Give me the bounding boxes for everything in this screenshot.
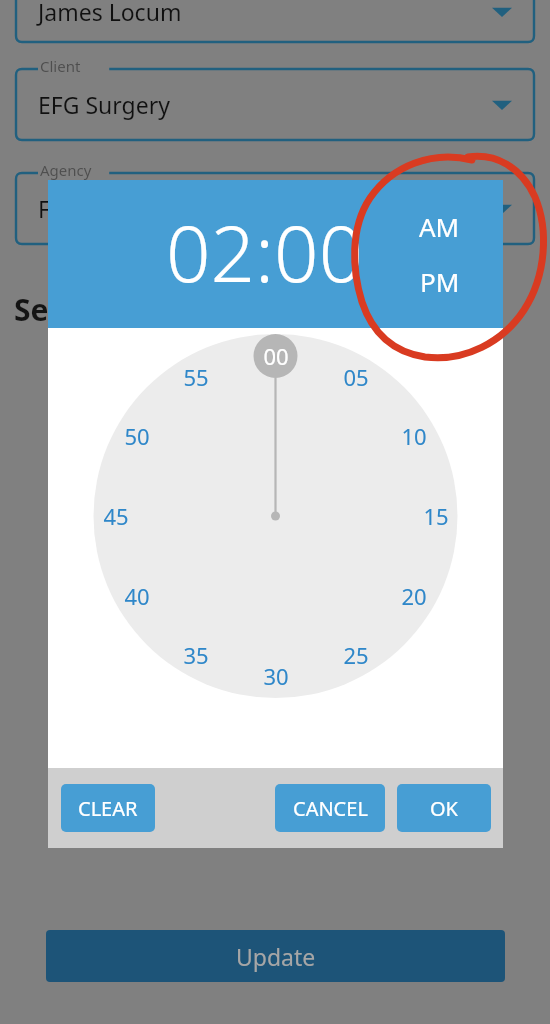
button[interactable]: 50 xyxy=(117,421,157,451)
button[interactable]: CANCEL xyxy=(275,784,385,832)
button[interactable]: Agency xyxy=(16,162,534,244)
staticText: 05 xyxy=(343,362,369,392)
staticText: 02:00 xyxy=(166,199,364,305)
staticText: 40 xyxy=(124,581,150,611)
button[interactable]: 40 xyxy=(117,581,157,611)
button[interactable]: 30 xyxy=(256,661,296,691)
button[interactable]: 10 xyxy=(394,421,434,451)
button[interactable]: CLEAR xyxy=(61,784,155,832)
staticText: 45 xyxy=(103,501,129,531)
button[interactable]: 00 xyxy=(256,341,296,371)
staticText: 30 xyxy=(263,661,289,691)
button[interactable]: OK xyxy=(397,784,491,832)
staticText: Se xyxy=(14,289,49,330)
button[interactable]: 25 xyxy=(336,640,376,670)
staticText: AM xyxy=(419,209,460,244)
button[interactable]: Client xyxy=(16,58,534,140)
staticText: CLEAR xyxy=(78,795,138,822)
button[interactable]: 05 xyxy=(336,362,376,392)
staticText: 50 xyxy=(124,421,150,451)
staticText: 35 xyxy=(183,640,209,670)
button[interactable]: PM xyxy=(416,261,464,302)
staticText: Agency xyxy=(40,160,92,180)
staticText: EFG Surgery xyxy=(38,89,170,120)
other: Annotation circle xyxy=(0,0,550,1024)
button[interactable]: James Locum xyxy=(16,0,534,42)
button[interactable]: 55 xyxy=(176,362,216,392)
staticText: 15 xyxy=(423,501,449,531)
staticText: OK xyxy=(430,795,458,822)
staticText: 55 xyxy=(183,362,209,392)
button[interactable]: 20 xyxy=(394,581,434,611)
staticText: 00 xyxy=(263,341,289,371)
staticText: CANCEL xyxy=(293,795,368,822)
button[interactable]: 45 xyxy=(96,501,136,531)
staticText: PM xyxy=(420,264,460,299)
staticText: 20 xyxy=(401,581,427,611)
staticText: 10 xyxy=(401,421,427,451)
button[interactable]: AM xyxy=(415,206,464,247)
staticText: Update xyxy=(236,941,316,972)
button[interactable]: 02:00 xyxy=(166,199,364,305)
button[interactable]: 15 xyxy=(416,501,456,531)
staticText: F xyxy=(38,193,50,224)
staticText: Client xyxy=(40,56,81,76)
button[interactable]: Update xyxy=(46,930,505,982)
staticText: James Locum xyxy=(38,0,182,27)
staticText: 25 xyxy=(343,640,369,670)
button[interactable]: 35 xyxy=(176,640,216,670)
